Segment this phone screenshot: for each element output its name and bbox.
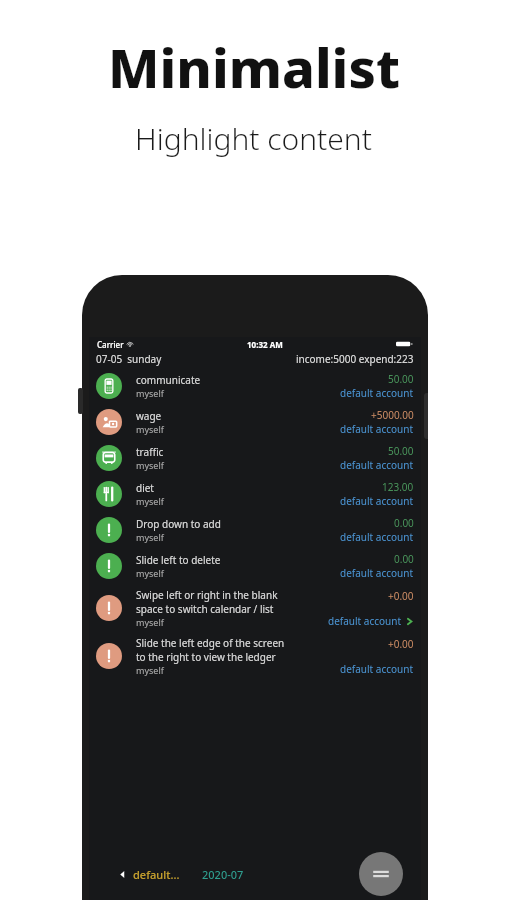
staticText: default account [328, 614, 402, 628]
staticText: Drop down to add [136, 517, 221, 531]
staticText: 10:32 AM [247, 339, 283, 350]
staticText: default account [340, 530, 414, 544]
staticText: Minimalist [108, 30, 400, 104]
staticText: myself [136, 616, 164, 628]
staticText: 0.00 [394, 516, 414, 530]
staticText: myself [136, 423, 164, 435]
staticText: myself [136, 567, 164, 579]
staticText: to the right to view the ledger [136, 650, 276, 664]
button[interactable]: Slide left to delete [89, 548, 421, 584]
staticText: default account [340, 494, 414, 508]
staticText: myself [136, 495, 164, 507]
staticText: Swipe left or right in the blank [136, 588, 278, 602]
staticText: default account [340, 662, 414, 676]
staticText: myself [136, 387, 164, 399]
staticText: Slide the left edge of the screen [136, 636, 285, 650]
button[interactable]: 2020-07 [200, 865, 246, 884]
staticText: 50.00 [388, 444, 414, 458]
button[interactable]: Swipe left or right in the blank [89, 584, 421, 632]
staticText: default account [340, 566, 414, 580]
staticText: myself [136, 459, 164, 471]
staticText: default account [340, 386, 414, 400]
staticText: wage [136, 409, 162, 423]
staticText: traffic [136, 445, 164, 459]
staticText: Carrier [97, 339, 124, 350]
staticText: myself [136, 664, 164, 676]
button[interactable]: communicate [89, 368, 421, 404]
button[interactable]: traffic [89, 440, 421, 476]
staticText: 50.00 [388, 372, 414, 386]
staticText: 0.00 [394, 552, 414, 566]
button[interactable]: Slide the left edge of the screen [89, 632, 421, 680]
staticText: 07-05 sunday [96, 352, 162, 366]
staticText: default account [340, 458, 414, 472]
staticText: communicate [136, 373, 201, 387]
staticText: Slide left to delete [136, 553, 221, 567]
staticText: 123.00 [382, 480, 414, 494]
staticText: +0.00 [388, 589, 414, 603]
staticText: 2020-07 [202, 867, 244, 882]
button[interactable]: Drop down to add [89, 512, 421, 548]
staticText: default... [133, 867, 180, 882]
staticText: myself [136, 531, 164, 543]
staticText: default account [340, 422, 414, 436]
staticText: Highlight content [135, 118, 372, 159]
staticText: diet [136, 481, 154, 495]
staticText: income:5000 expend:223 [296, 352, 414, 366]
staticText: +0.00 [388, 637, 414, 651]
button[interactable]: Menu [359, 852, 403, 896]
button[interactable]: diet [89, 476, 421, 512]
button[interactable]: default... [117, 865, 182, 884]
staticText: +5000.00 [371, 408, 414, 422]
button[interactable]: wage [89, 404, 421, 440]
staticText: space to switch calendar / list [136, 602, 274, 616]
